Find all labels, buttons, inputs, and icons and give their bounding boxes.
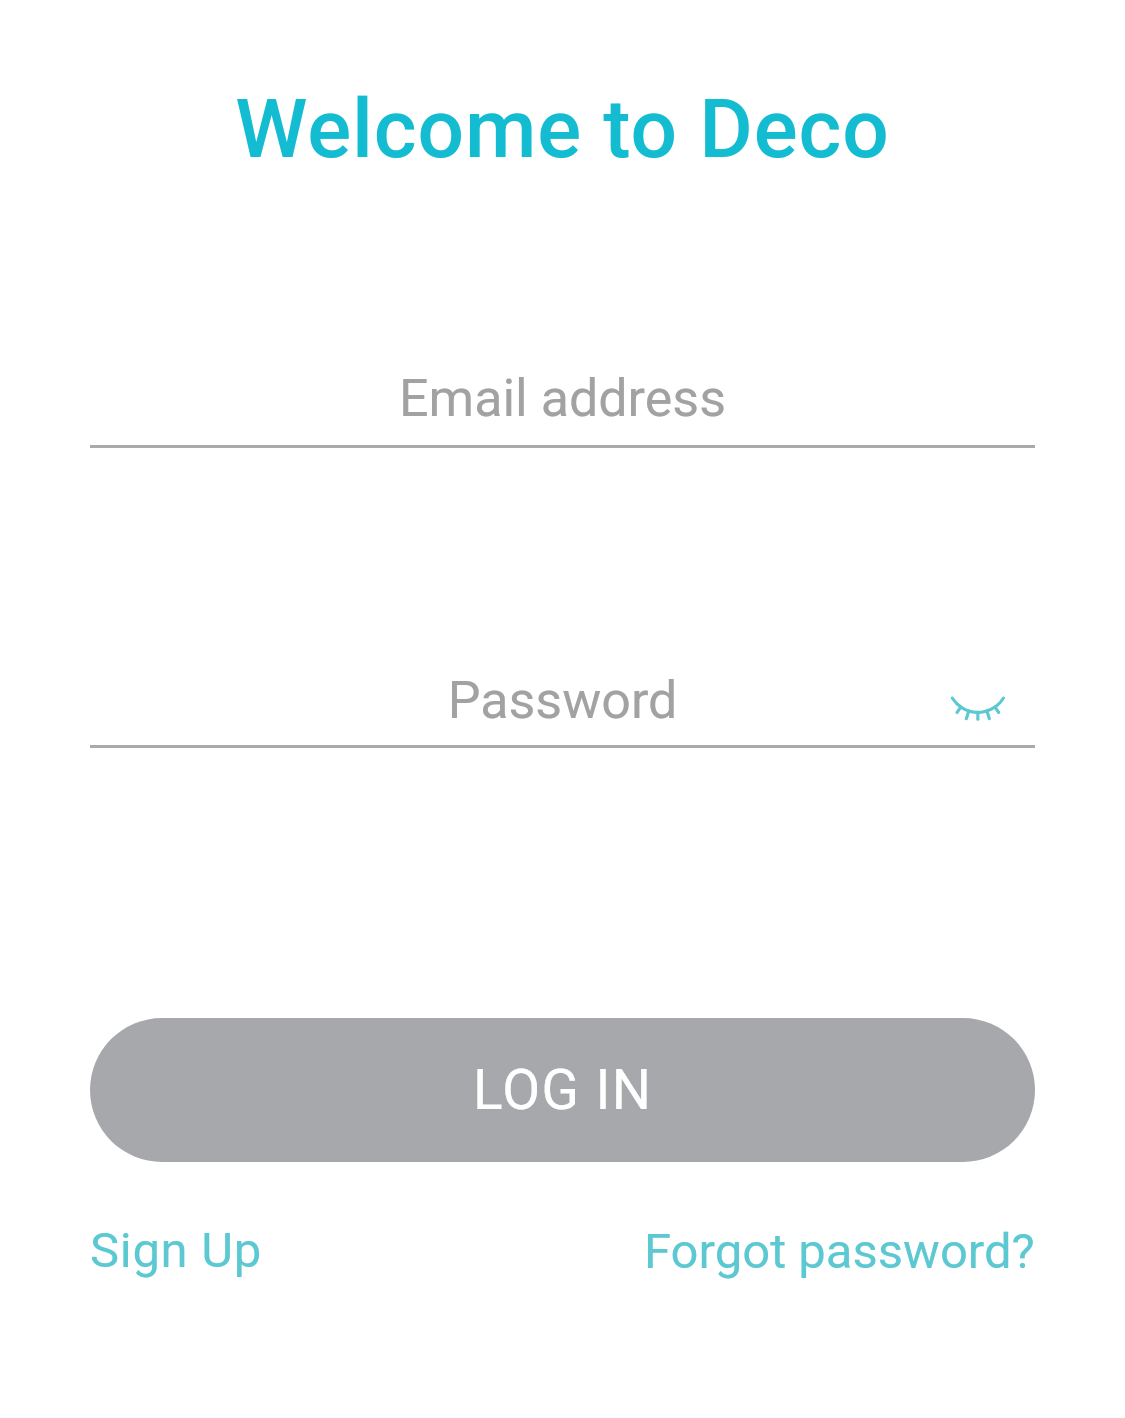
- staticText: LOG IN: [473, 1058, 653, 1122]
- button[interactable]: Email address: [0, 340, 1125, 472]
- button[interactable]: Sign Up: [90, 1222, 262, 1279]
- staticText: Forgot password?: [644, 1223, 1035, 1280]
- button[interactable]: Show password: [918, 640, 1038, 750]
- button[interactable]: Password: [0, 640, 1125, 772]
- button[interactable]: Forgot password?: [644, 1223, 1035, 1280]
- button[interactable]: LOG IN: [90, 1018, 1035, 1162]
- staticText: Welcome to Deco: [0, 81, 1125, 177]
- staticText: Password: [0, 670, 1125, 731]
- staticText: Email address: [0, 368, 1125, 429]
- staticText: Sign Up: [90, 1222, 262, 1279]
